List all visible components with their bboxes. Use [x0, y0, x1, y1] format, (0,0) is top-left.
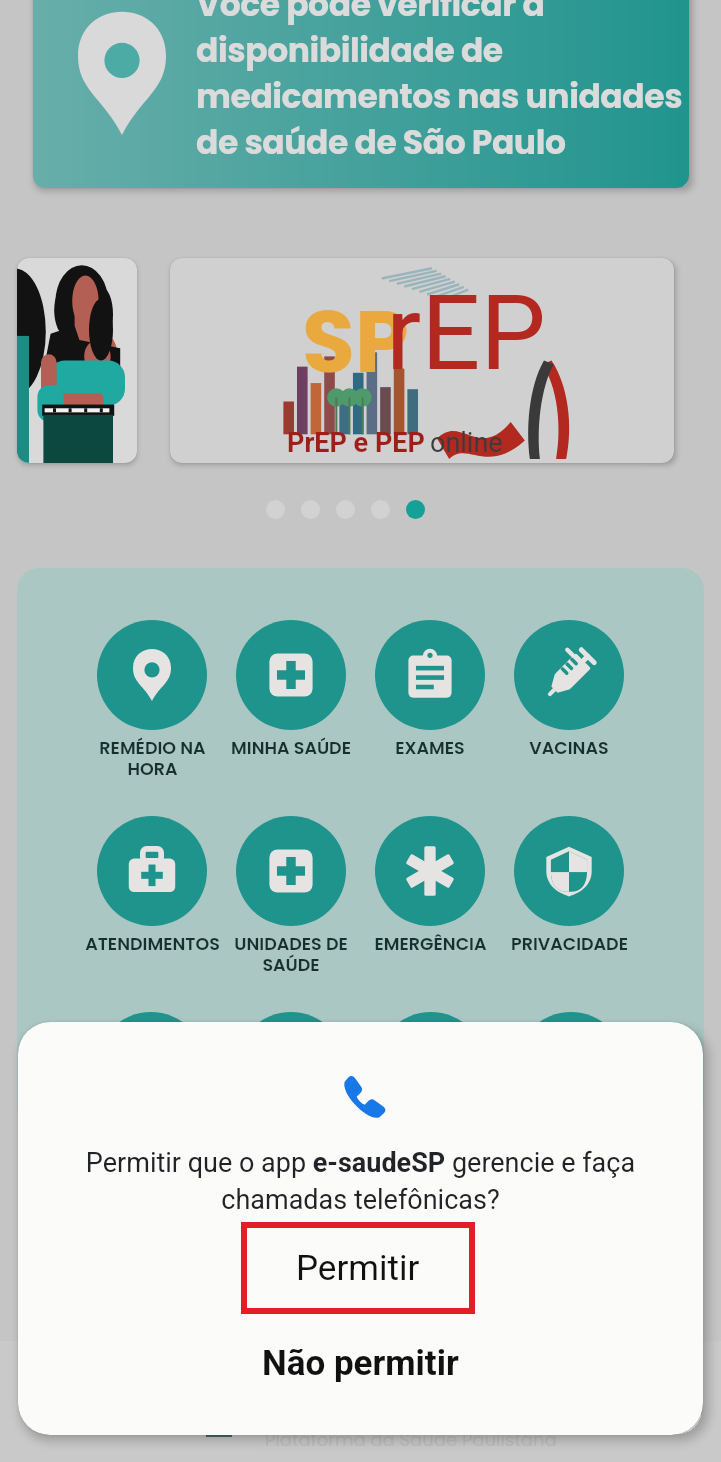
staticText: rEP — [386, 273, 546, 395]
staticText: PrEP e PEP — [287, 427, 425, 459]
staticText: Permitir que o app e-saudeSP gerencie e … — [48, 1147, 673, 1215]
staticText: MINHA SAÚDE — [231, 736, 351, 761]
button[interactable]: EMERGÊNCIA — [361, 816, 499, 957]
button[interactable]: Você pode verificar a disponibilidade de… — [33, 0, 689, 188]
button[interactable] — [17, 258, 137, 463]
button[interactable]: EXAMES — [361, 620, 499, 761]
staticText: UNIDADES DE SAÚDE — [234, 932, 348, 977]
staticText: EXAMES — [395, 736, 465, 761]
staticText: Você pode verificar a disponibilidade de… — [196, 0, 683, 165]
staticText: online — [430, 427, 503, 459]
button[interactable]: PRIVACIDADE — [500, 816, 638, 957]
button[interactable]: Permitir — [241, 1222, 475, 1314]
staticText: EMERGÊNCIA — [374, 932, 487, 957]
button[interactable]: REMÉDIO NA HORA — [83, 620, 221, 781]
staticText: ATENDIMENTOS — [85, 932, 220, 957]
other: Phone — [339, 1074, 383, 1118]
button[interactable] — [376, 1012, 486, 1122]
staticText: Não permitir — [262, 1343, 459, 1384]
button[interactable]: SP — [170, 258, 674, 463]
staticText: Permitir — [296, 1248, 420, 1289]
button[interactable] — [96, 1012, 206, 1122]
staticText: VACINAS — [529, 736, 609, 761]
button[interactable] — [516, 1012, 626, 1122]
staticText: SP — [302, 282, 409, 402]
staticText: Plataforma da Saúde Paulistana — [265, 1427, 557, 1452]
button[interactable]: UNIDADES DE SAÚDE — [222, 816, 360, 977]
button[interactable]: Não permitir — [18, 1323, 703, 1403]
staticText: PRIVACIDADE — [511, 932, 628, 957]
button[interactable]: MINHA SAÚDE — [222, 620, 360, 761]
button[interactable]: VACINAS — [500, 620, 638, 761]
button[interactable] — [236, 1012, 346, 1122]
staticText: REMÉDIO NA HORA — [99, 736, 206, 781]
button[interactable]: ATENDIMENTOS — [83, 816, 221, 957]
